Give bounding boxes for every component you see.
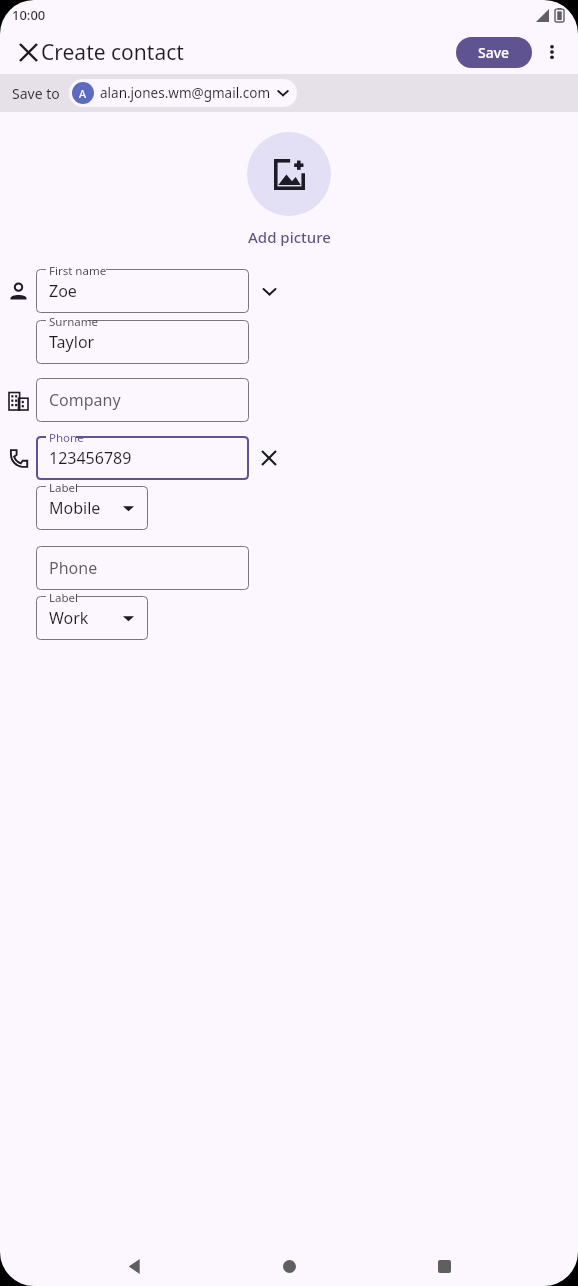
button[interactable]: Phone — [36, 546, 249, 590]
staticText: Save to — [12, 84, 60, 103]
button[interactable]: Close — [8, 32, 48, 72]
button[interactable]: Add picture — [247, 132, 331, 216]
button[interactable]: Home — [269, 1246, 309, 1286]
button[interactable]: Recent apps — [424, 1246, 464, 1286]
staticText: First name — [49, 263, 107, 279]
staticText: Taylor — [49, 331, 95, 353]
staticText: Zoe — [49, 280, 77, 302]
staticText: Label — [49, 480, 79, 496]
staticText: Phone — [49, 557, 98, 579]
staticText: Company — [49, 389, 121, 411]
staticText: alan.jones.wm@gmail.com — [100, 84, 271, 102]
button[interactable]: Expand name fields — [253, 275, 285, 307]
button[interactable]: Label — [36, 486, 148, 530]
button[interactable]: Save — [456, 37, 532, 68]
staticText: Save — [478, 43, 510, 62]
staticText: 123456789 — [49, 447, 132, 469]
button[interactable]: First name — [36, 269, 249, 313]
staticText: Surname — [49, 314, 98, 330]
staticText: Mobile — [49, 497, 101, 519]
button[interactable]: Surname — [36, 320, 249, 364]
staticText: Phone — [49, 430, 84, 446]
button[interactable]: More options — [532, 32, 572, 72]
button[interactable]: Label — [36, 596, 148, 640]
staticText: 10:00 — [12, 6, 46, 24]
button[interactable]: A — [69, 79, 297, 107]
button[interactable]: Clear phone — [253, 442, 285, 474]
staticText: Label — [49, 590, 79, 606]
staticText: Work — [49, 607, 89, 629]
staticText: Create contact — [41, 38, 184, 67]
button[interactable]: Phone — [36, 436, 249, 480]
staticText: A — [79, 86, 87, 101]
button[interactable]: Add picture — [248, 227, 331, 247]
button[interactable]: Back — [115, 1246, 155, 1286]
button[interactable]: Company — [36, 378, 249, 422]
